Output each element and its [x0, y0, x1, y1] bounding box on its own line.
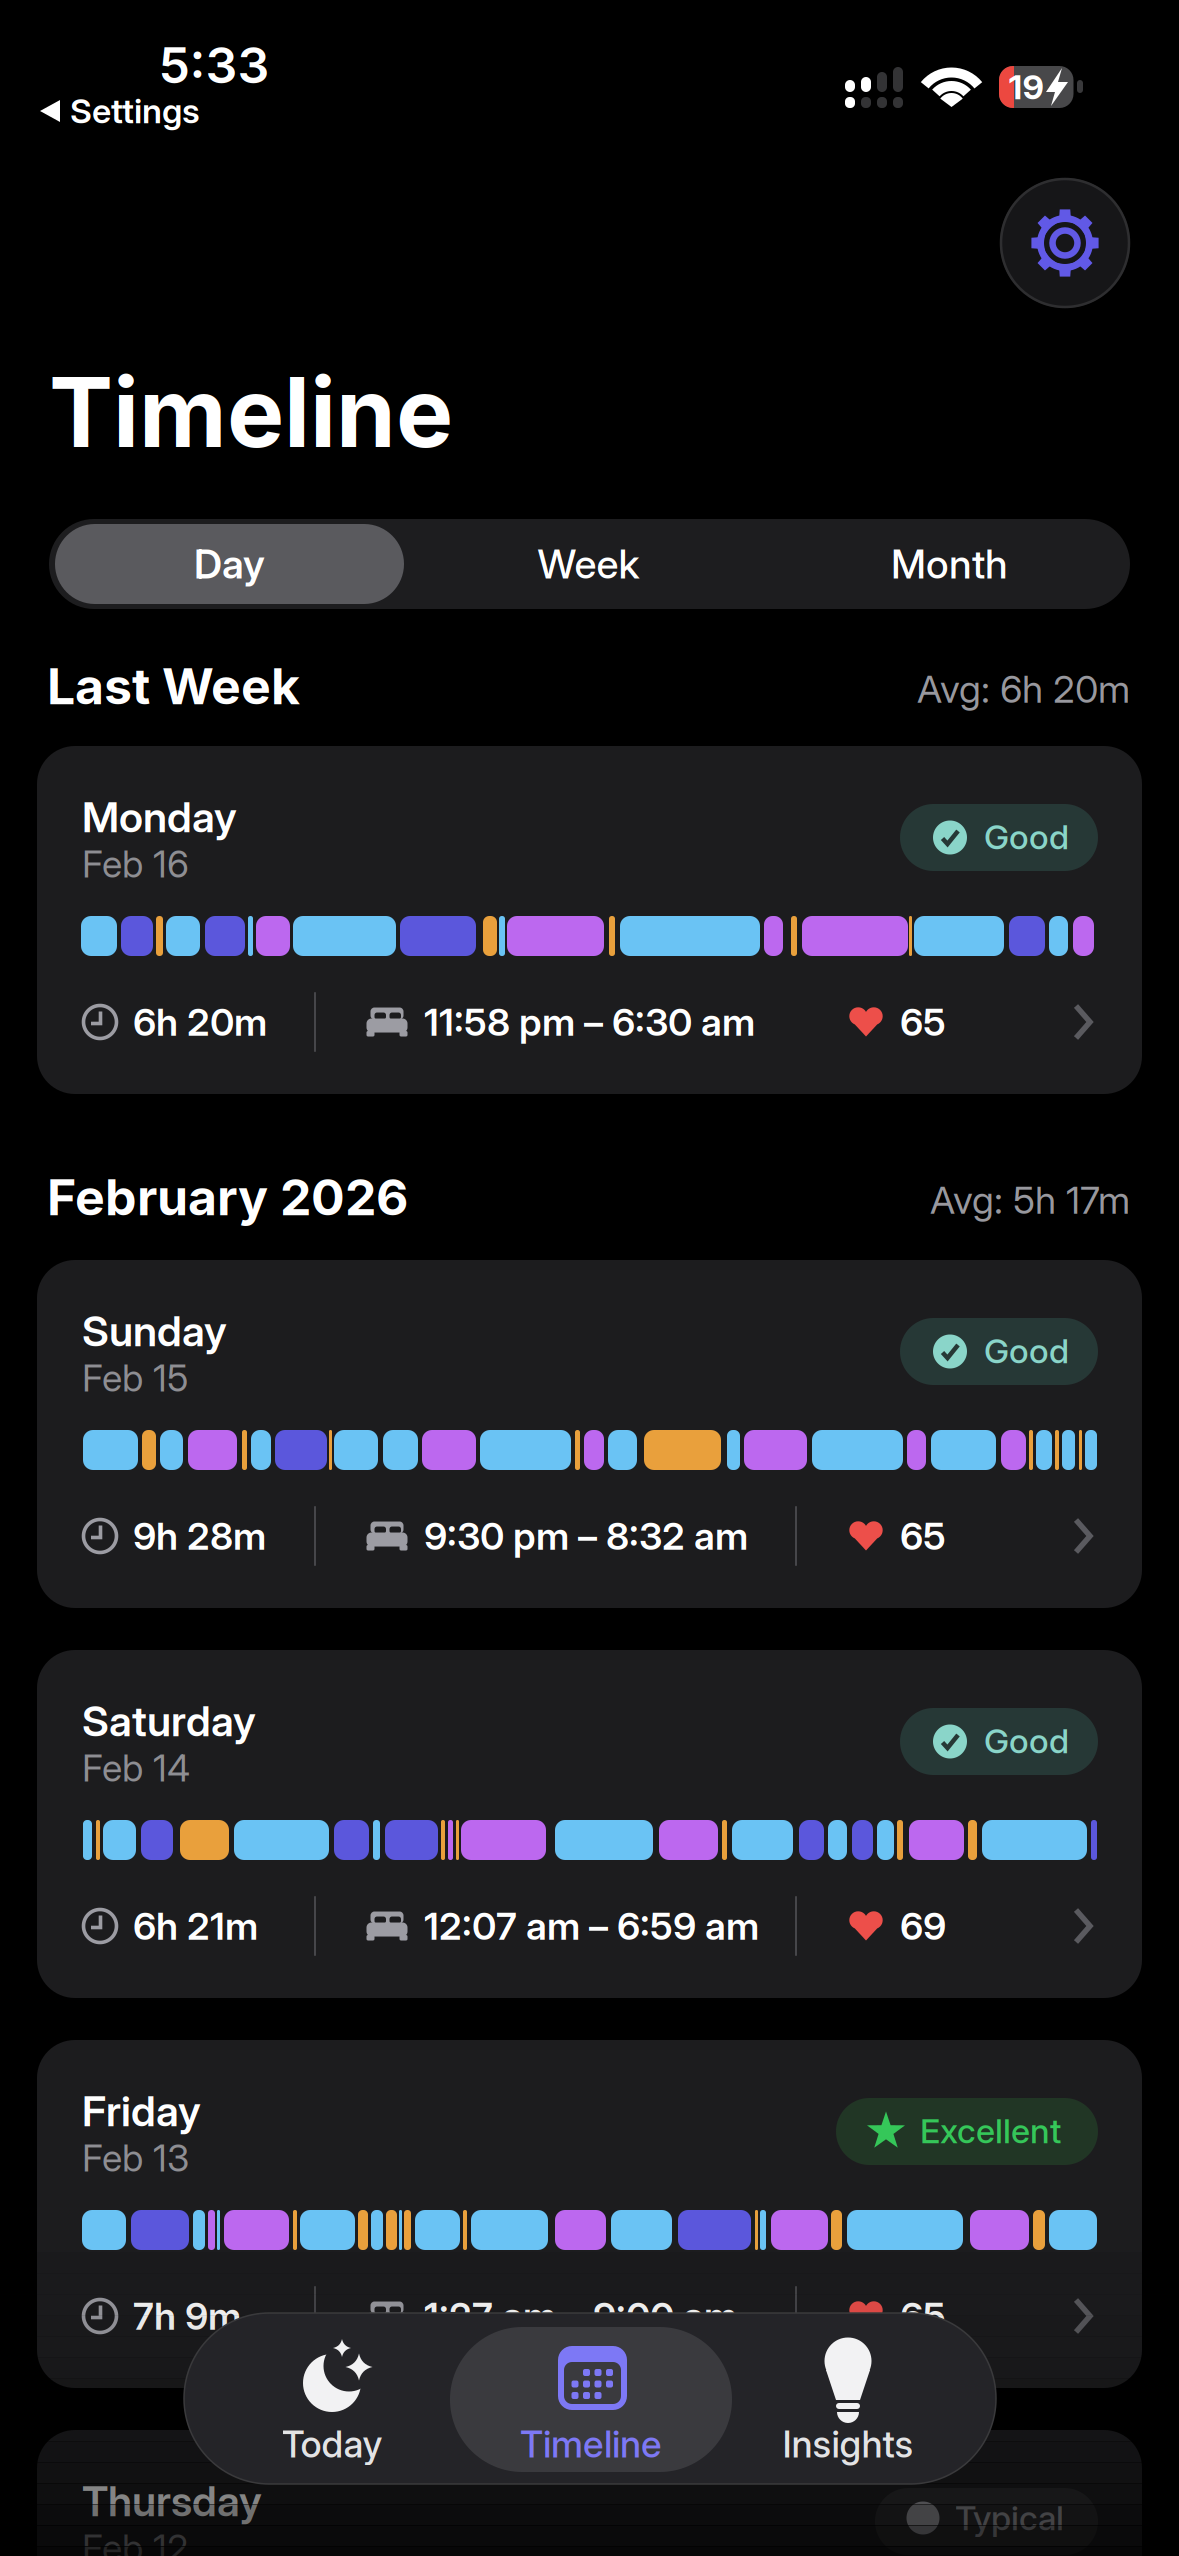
staticText: Timeline — [520, 2422, 662, 2466]
staticText: Avg: 5h 17m — [930, 1177, 1130, 1223]
button[interactable]: Settings — [999, 177, 1131, 309]
button[interactable]: Timeline — [450, 2327, 732, 2472]
button[interactable]: Insights — [728, 2313, 968, 2484]
staticText: Monday — [82, 792, 237, 842]
button[interactable]: Week — [414, 524, 763, 604]
staticText: 65 — [900, 1513, 946, 1559]
staticText: Feb 15 — [82, 1356, 188, 1400]
staticText: 12:07 am – 6:59 am — [424, 1903, 759, 1949]
staticText: 65 — [900, 999, 946, 1045]
staticText: Thursday — [82, 2476, 262, 2526]
staticText: 69 — [900, 1903, 946, 1949]
button[interactable]: Today — [212, 2313, 452, 2484]
staticText: Excellent — [920, 2110, 1061, 2151]
staticText: Settings — [70, 90, 200, 131]
staticText: 65 — [900, 2293, 946, 2339]
staticText: Feb 12 — [82, 2526, 188, 2556]
staticText: Last Week — [47, 656, 300, 716]
staticText: 7h 9m — [133, 2293, 241, 2339]
button[interactable]: Thursday — [37, 2430, 1142, 2556]
staticText: Saturday — [82, 1696, 256, 1746]
button[interactable]: Month — [775, 524, 1124, 604]
staticText: Day — [194, 540, 265, 588]
staticText: Week — [537, 540, 639, 588]
staticText: 9h 28m — [133, 1513, 266, 1559]
staticText: Typical — [955, 2497, 1064, 2538]
staticText: Feb 13 — [82, 2136, 189, 2180]
staticText: 11:58 pm – 6:30 am — [424, 999, 755, 1045]
staticText: Friday — [82, 2086, 201, 2136]
staticText: Month — [891, 540, 1008, 588]
button[interactable]: Sunday — [37, 1260, 1142, 1608]
staticText: Good — [984, 1330, 1069, 1371]
staticText: 5:33 — [158, 35, 269, 95]
button[interactable]: Monday — [37, 746, 1142, 1094]
button[interactable]: Friday — [37, 2040, 1142, 2388]
button[interactable]: Day — [55, 524, 404, 604]
staticText: Good — [984, 1720, 1069, 1761]
staticText: 6h 21m — [133, 1903, 258, 1949]
staticText: Today — [281, 2422, 382, 2466]
staticText: 9:30 pm – 8:32 am — [424, 1513, 748, 1559]
staticText: Sunday — [82, 1306, 227, 1356]
staticText: 1:27 am – 9:00 am — [424, 2293, 737, 2339]
staticText: Insights — [782, 2422, 913, 2466]
staticText: Good — [984, 816, 1069, 857]
staticText: 19 — [1008, 66, 1043, 107]
staticText: Feb 14 — [82, 1746, 190, 1790]
staticText: 6h 20m — [133, 999, 267, 1045]
staticText: Timeline — [49, 354, 453, 470]
staticText: Feb 16 — [82, 842, 189, 886]
button[interactable]: Back to Settings — [30, 88, 300, 134]
button[interactable]: Saturday — [37, 1650, 1142, 1998]
staticText: Avg: 6h 20m — [917, 666, 1130, 712]
staticText: February 2026 — [47, 1167, 408, 1227]
